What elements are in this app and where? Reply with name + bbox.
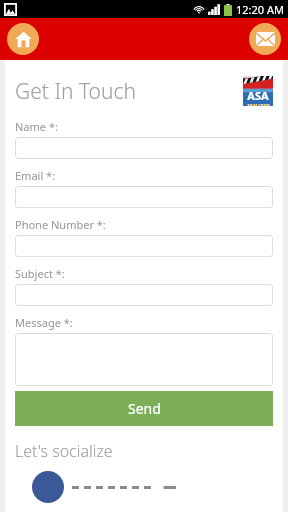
staticText: Phone Number *: (15, 217, 106, 232)
staticText: Message *: (15, 315, 73, 330)
button[interactable]: Facebook (32, 471, 64, 503)
button[interactable] (15, 137, 273, 159)
staticText: 12:20 AM (236, 2, 284, 17)
staticText: Subject *: (15, 266, 65, 281)
button[interactable] (15, 284, 273, 306)
staticText: Name *: (15, 119, 58, 134)
staticText: Get In Touch (15, 77, 136, 106)
button[interactable] (15, 186, 273, 208)
button[interactable] (15, 333, 273, 386)
button[interactable]: Email (249, 23, 281, 55)
button[interactable]: ASA Film Crew logo (243, 76, 273, 106)
staticText: ASA (247, 88, 269, 103)
button[interactable] (15, 235, 273, 257)
button[interactable]: Home (7, 23, 39, 55)
button[interactable]: Send (15, 391, 273, 426)
staticText: Send (128, 399, 161, 418)
staticText: Let's socialize (15, 440, 113, 462)
staticText: Email *: (15, 168, 56, 183)
staticText: FILM CREW (247, 103, 270, 106)
